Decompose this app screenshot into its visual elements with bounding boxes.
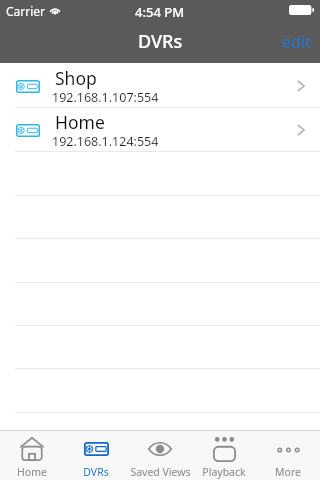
button[interactable]: Shop <box>0 64 320 108</box>
button[interactable]: Home <box>0 108 320 152</box>
button[interactable]: Home <box>0 431 64 480</box>
staticText: Home <box>55 110 105 134</box>
staticText: DVRs <box>138 29 183 54</box>
staticText: 192.168.1.107:554 <box>52 89 159 106</box>
staticText: Saved Views <box>130 465 191 479</box>
staticText: 4:54 PM <box>135 3 185 21</box>
staticText: Carrier <box>6 3 46 19</box>
button[interactable]: Playback <box>192 431 256 480</box>
staticText: edit <box>282 31 311 52</box>
staticText: More <box>275 465 301 479</box>
button[interactable]: More <box>256 431 320 480</box>
button[interactable]: Saved Views <box>128 431 192 480</box>
button[interactable]: DVRs <box>64 431 128 480</box>
staticText: Playback <box>202 465 246 479</box>
staticText: Home <box>17 465 47 479</box>
button[interactable]: edit <box>268 20 320 63</box>
staticText: DVRs <box>83 465 109 479</box>
staticText: 192.168.1.124:554 <box>52 133 159 150</box>
staticText: Shop <box>55 66 97 90</box>
